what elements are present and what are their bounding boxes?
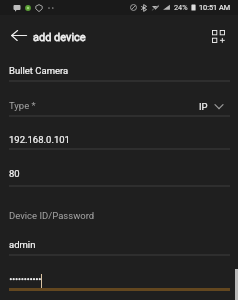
button[interactable]: IP [199,96,229,116]
staticText: 192.168.0.101 [9,134,70,145]
staticText: IP [199,101,208,112]
staticText: admin [9,239,36,250]
staticText: 80 [9,168,20,179]
button[interactable]: Bullet Camera [9,64,69,77]
button[interactable]: admin [9,238,36,251]
staticText: Bullet Camera [9,65,69,76]
button[interactable]: Device ID/Password [9,209,95,222]
button[interactable]: 80 [9,167,20,180]
button[interactable]: Back [6,22,32,48]
button[interactable]: 192.168.0.101 [9,133,70,146]
staticText: Type * [9,100,36,111]
staticText: 10:51 AM [199,3,231,12]
staticText: Device ID/Password [9,210,95,221]
button[interactable]: Type * [9,99,36,112]
staticText: add device [33,31,86,44]
button[interactable]: Scan QR code [205,23,232,50]
staticText: 24% [174,3,188,12]
